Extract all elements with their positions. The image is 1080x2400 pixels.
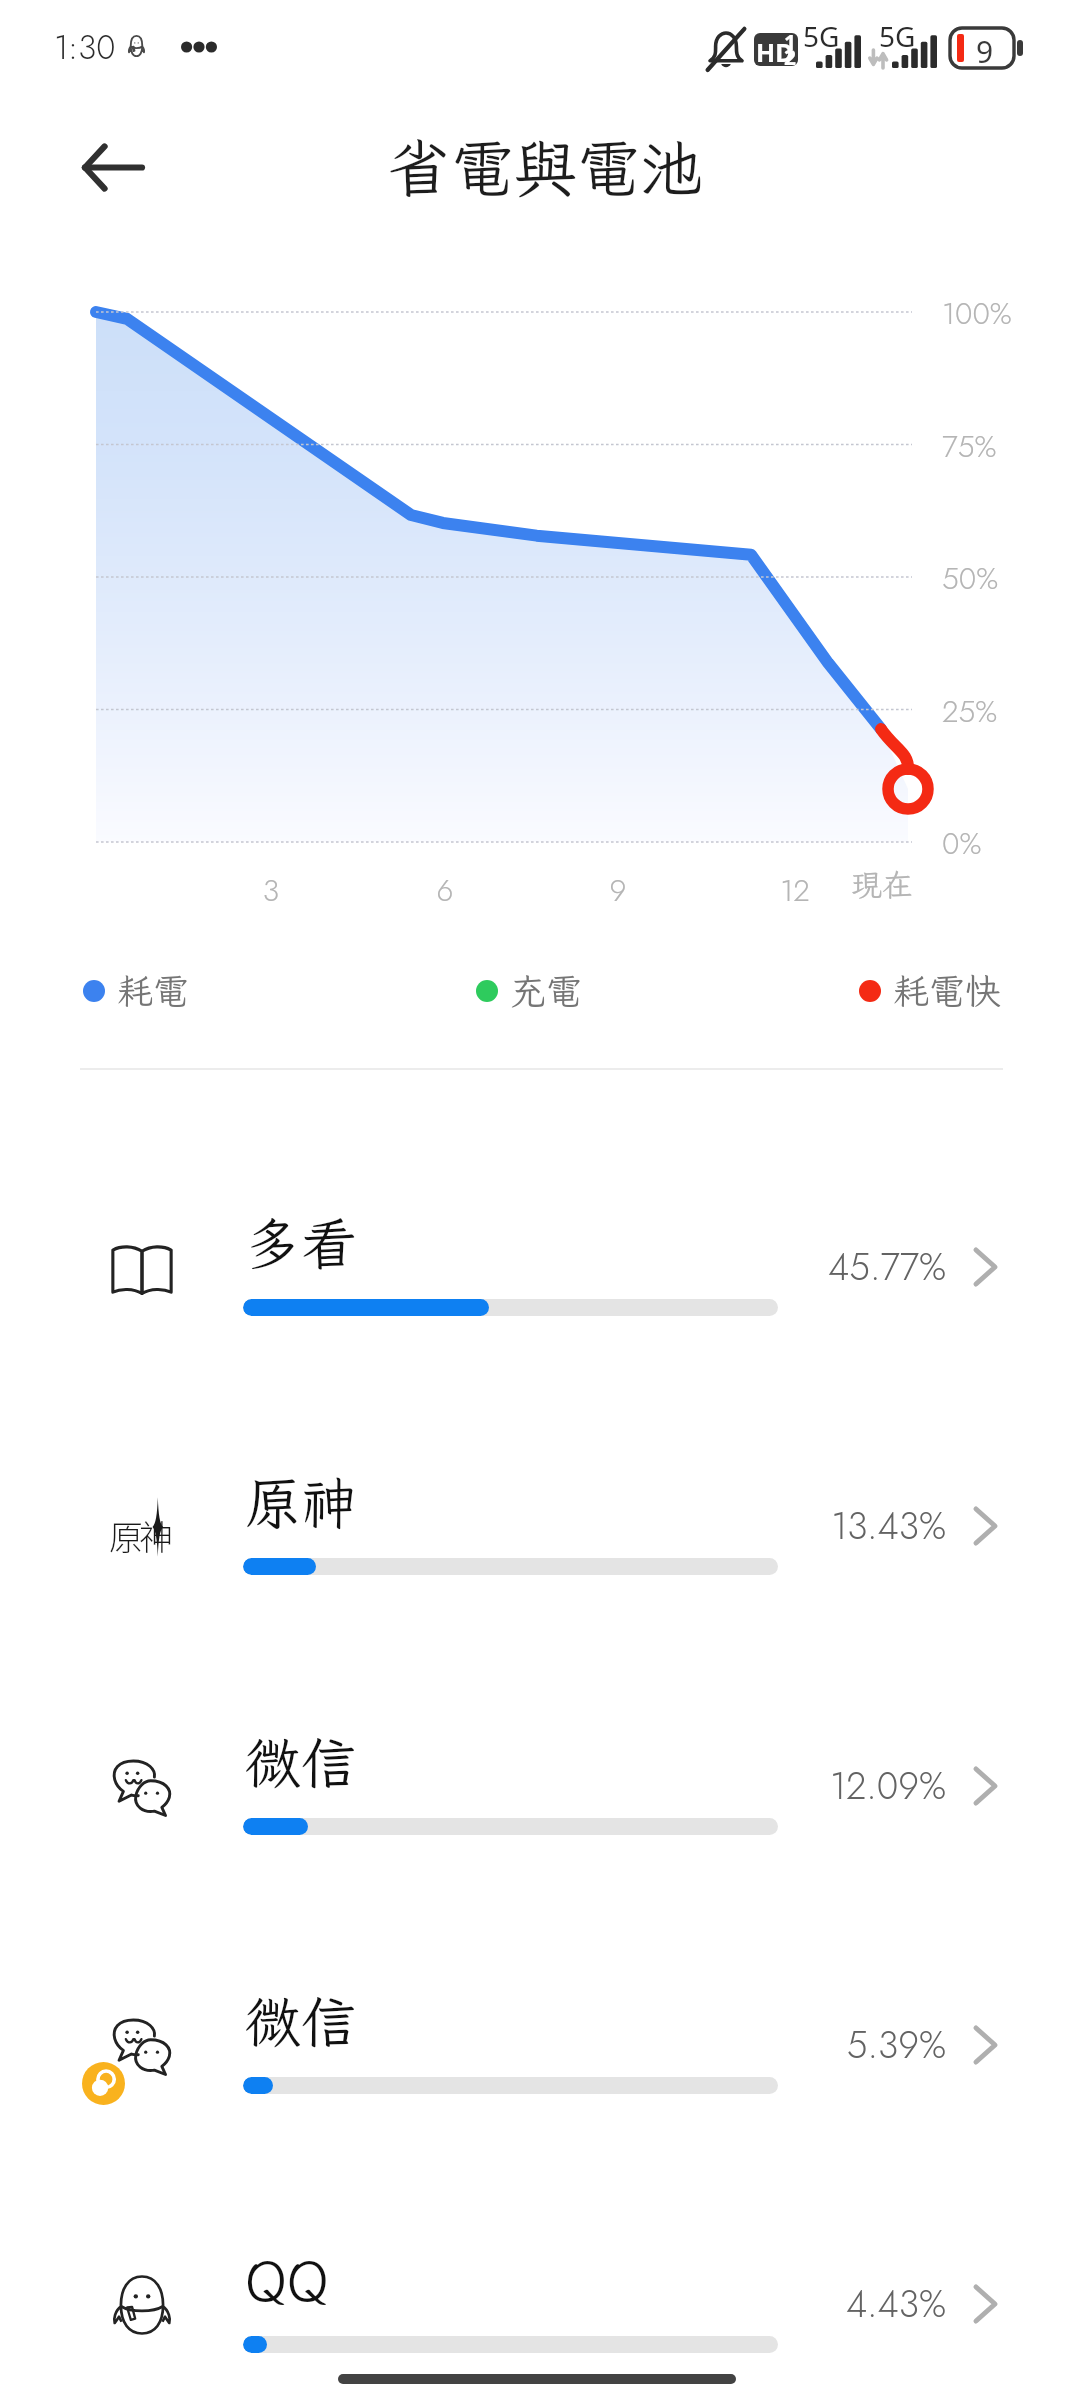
button[interactable]: 原: [0, 1439, 1080, 1639]
button[interactable]: 返回: [62, 122, 162, 214]
staticText: HD: [756, 35, 794, 66]
staticText: 5G: [879, 17, 916, 55]
staticText: 6: [405, 869, 485, 912]
staticText: 現在: [851, 864, 913, 905]
staticText: 12: [755, 869, 835, 912]
staticText: QQ: [245, 2243, 329, 2317]
staticText: 9: [578, 869, 658, 912]
staticText: 3: [231, 869, 311, 912]
staticText: 45.77%: [700, 1240, 946, 1293]
staticText: 13.43%: [700, 1499, 946, 1552]
button[interactable]: 多看: [0, 1180, 1080, 1380]
staticText: 微信: [245, 1725, 357, 1799]
staticText: 0%: [942, 822, 982, 865]
staticText: 1: [784, 33, 797, 57]
staticText: 100%: [942, 292, 1012, 335]
staticText: 5G: [803, 17, 840, 55]
staticText: 2: [784, 43, 797, 66]
staticText: 50%: [942, 557, 999, 600]
staticText: 耗電快: [893, 967, 1002, 1014]
staticText: 神: [139, 1511, 173, 1560]
staticText: 多看: [245, 1206, 357, 1280]
staticText: 原神: [245, 1465, 357, 1539]
staticText: 耗電: [117, 967, 190, 1014]
staticText: 9: [976, 31, 994, 72]
staticText: 12.09%: [700, 1759, 946, 1812]
staticText: 省電與電池: [388, 126, 703, 209]
button[interactable]: QQ: [0, 2217, 1080, 2400]
staticText: 微信: [245, 1984, 357, 2058]
staticText: 充電: [510, 967, 583, 1014]
button[interactable]: 微信: [0, 1958, 1080, 2158]
button[interactable]: 微信: [0, 1699, 1080, 1899]
staticText: 4.43%: [700, 2277, 946, 2330]
staticText: 25%: [942, 690, 998, 733]
staticText: 5.39%: [700, 2018, 946, 2071]
staticText: 1:30: [54, 24, 116, 72]
staticText: 原: [109, 1511, 143, 1560]
staticText: 75%: [942, 425, 997, 468]
